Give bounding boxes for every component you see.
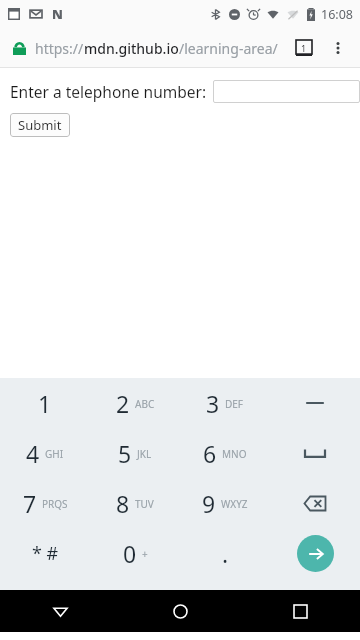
button[interactable]: 6 — [180, 428, 270, 478]
staticText: 7 — [23, 488, 37, 519]
staticText: 8 — [116, 488, 130, 519]
staticText: TUV — [135, 497, 154, 511]
staticText: /learning-area/html — [179, 39, 285, 58]
staticText: 16:08 — [321, 6, 353, 23]
button[interactable]: Back — [0, 590, 120, 632]
staticText: Enter a telephone number: — [10, 81, 207, 102]
staticText: 2 — [116, 388, 130, 419]
staticText: N — [52, 5, 63, 23]
button[interactable]: Period — [180, 528, 270, 578]
staticText: Submit — [18, 116, 62, 134]
button[interactable]: 8 — [90, 478, 180, 528]
staticText: MNO — [222, 447, 247, 461]
staticText: . — [222, 538, 229, 569]
staticText: https:// — [35, 39, 84, 58]
button[interactable] — [213, 80, 360, 103]
staticText: WXYZ — [221, 497, 248, 511]
button[interactable]: 7 — [0, 478, 90, 528]
button[interactable]: Backspace — [270, 478, 360, 528]
staticText: 9 — [202, 488, 216, 519]
button[interactable]: Tabs — [290, 34, 318, 62]
staticText: DEF — [225, 397, 244, 411]
button[interactable]: Enter — [270, 528, 360, 578]
staticText: + — [142, 547, 148, 561]
button[interactable]: Submit — [10, 113, 70, 137]
button[interactable]: Recent apps — [240, 590, 360, 632]
staticText: GHI — [45, 447, 64, 461]
staticText: 5 — [118, 438, 132, 469]
staticText: JKL — [137, 447, 152, 461]
staticText: * # — [32, 541, 59, 566]
button[interactable]: Space — [270, 428, 360, 478]
button[interactable]: 3 — [180, 378, 270, 428]
button[interactable]: https:// — [35, 39, 285, 58]
button[interactable]: 1 — [0, 378, 90, 428]
staticText: 1 — [301, 42, 307, 54]
button[interactable]: 9 — [180, 478, 270, 528]
button[interactable]: 4 — [0, 428, 90, 478]
staticText: 3 — [206, 388, 220, 419]
button[interactable]: * # — [0, 528, 90, 578]
button[interactable]: 5 — [90, 428, 180, 478]
button[interactable]: Dash — [270, 378, 360, 428]
staticText: 0 — [123, 538, 137, 569]
staticText: PRQS — [42, 497, 68, 511]
staticText: 6 — [203, 438, 217, 469]
button[interactable]: More options — [324, 34, 352, 62]
staticText: ABC — [135, 397, 155, 411]
staticText: 1 — [38, 388, 52, 419]
button[interactable]: 2 — [90, 378, 180, 428]
staticText: 4 — [26, 438, 40, 469]
button[interactable]: Home — [120, 590, 240, 632]
button[interactable]: 0 — [90, 528, 180, 578]
staticText: mdn.github.io — [84, 39, 179, 58]
